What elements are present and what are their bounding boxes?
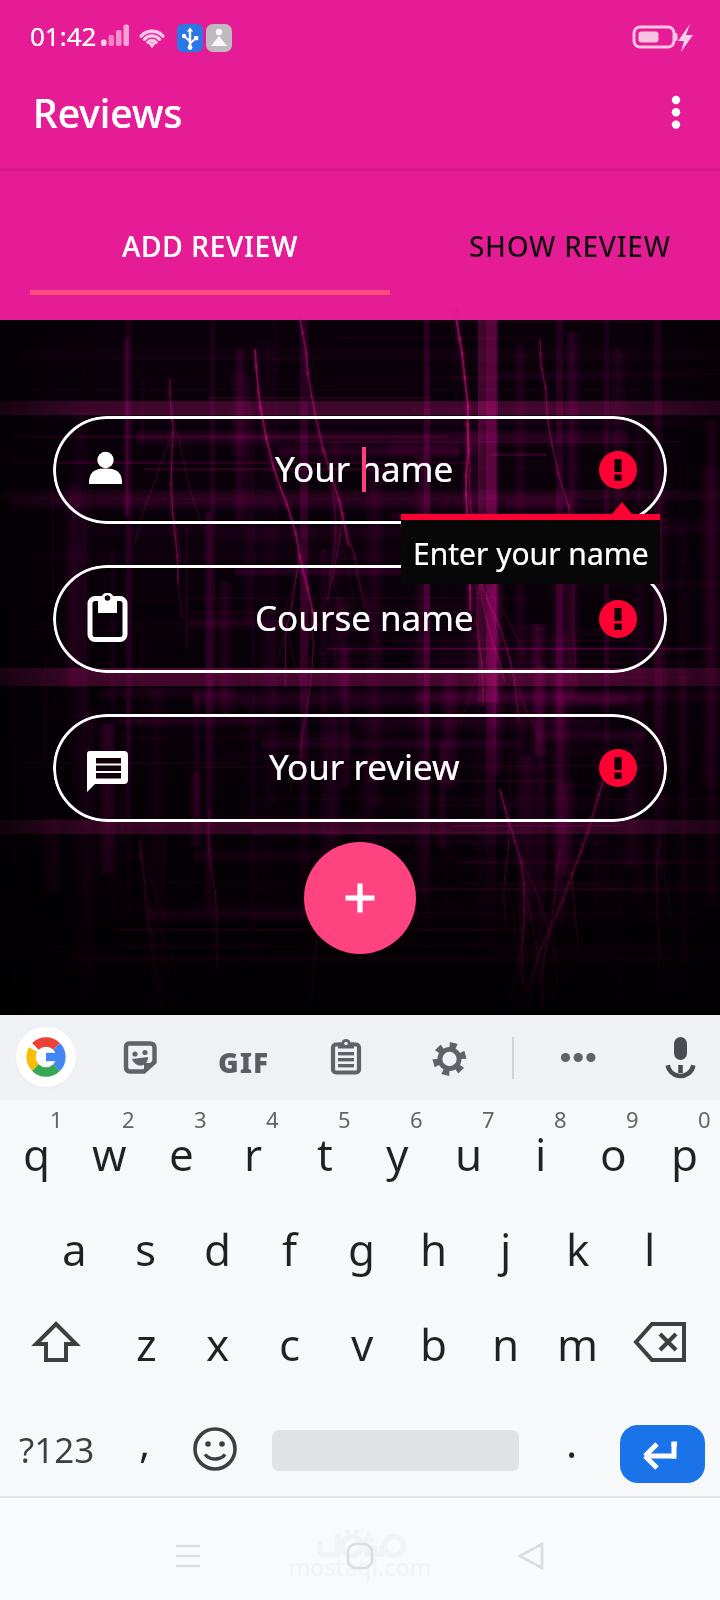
staticText: e xyxy=(169,1124,194,1184)
staticText: 0 xyxy=(698,1104,711,1134)
staticText: , xyxy=(139,1413,151,1470)
staticText: 7 xyxy=(482,1104,495,1134)
button[interactable]: e xyxy=(145,1103,217,1199)
staticText: u xyxy=(455,1124,483,1184)
button[interactable]: y xyxy=(361,1103,433,1199)
staticText: j xyxy=(500,1219,512,1279)
staticText: Reviews xyxy=(33,86,183,139)
button[interactable]: q xyxy=(1,1103,73,1199)
button[interactable]: ADD REVIEW xyxy=(30,168,390,320)
button[interactable]: Enter xyxy=(620,1425,705,1483)
staticText: 9 xyxy=(626,1104,639,1134)
button[interactable]: c xyxy=(254,1298,326,1390)
button[interactable]: f xyxy=(254,1203,326,1295)
button[interactable]: Home xyxy=(328,1524,392,1588)
button[interactable]: a xyxy=(38,1203,110,1295)
button[interactable]: w xyxy=(73,1103,145,1199)
staticText: v xyxy=(351,1314,374,1374)
staticText: 4 xyxy=(266,1104,279,1134)
staticText: Course name xyxy=(255,594,474,642)
staticText: a xyxy=(62,1219,87,1279)
staticText: SHOW REVIEW xyxy=(469,227,671,265)
staticText: Your name xyxy=(275,445,454,493)
button[interactable]: Backspace xyxy=(610,1298,714,1390)
button[interactable]: g xyxy=(326,1203,398,1295)
button[interactable]: Emoji xyxy=(181,1402,251,1498)
staticText: w xyxy=(92,1124,127,1184)
staticText: o xyxy=(600,1124,627,1184)
staticText: s xyxy=(135,1219,157,1279)
staticText: x xyxy=(206,1314,230,1374)
button[interactable]: Shift xyxy=(6,1298,110,1390)
button[interactable]: d xyxy=(182,1203,254,1295)
staticText: t xyxy=(317,1124,333,1184)
button[interactable]: Your name xyxy=(53,416,667,524)
staticText: d xyxy=(204,1219,232,1279)
staticText: 8 xyxy=(554,1104,567,1134)
button[interactable]: ?123 xyxy=(1,1402,113,1498)
staticText: y xyxy=(386,1124,409,1184)
button[interactable]: x xyxy=(182,1298,254,1390)
staticText: GIF xyxy=(218,1043,270,1081)
staticText: p xyxy=(671,1124,699,1184)
button[interactable]: m xyxy=(542,1298,614,1390)
staticText: mostaql.com xyxy=(280,1551,440,1582)
staticText: n xyxy=(492,1314,520,1374)
button[interactable]: j xyxy=(470,1203,542,1295)
staticText: ?123 xyxy=(19,1426,95,1474)
button[interactable]: Your review xyxy=(53,714,667,822)
button[interactable]: p xyxy=(649,1103,720,1199)
button[interactable]: k xyxy=(542,1203,614,1295)
button[interactable]: Recents xyxy=(156,1524,220,1588)
button[interactable]: Space xyxy=(253,1402,537,1498)
button[interactable]: i xyxy=(505,1103,577,1199)
button[interactable]: o xyxy=(577,1103,649,1199)
staticText: 6 xyxy=(410,1104,423,1134)
staticText: f xyxy=(282,1219,298,1279)
button[interactable]: z xyxy=(110,1298,182,1390)
button[interactable]: Add review xyxy=(304,842,416,954)
button[interactable]: . xyxy=(541,1402,603,1498)
staticText: Enter your name xyxy=(413,533,649,574)
staticText: 3 xyxy=(194,1104,207,1134)
staticText: z xyxy=(136,1314,157,1374)
staticText: r xyxy=(244,1124,263,1184)
button[interactable]: Back xyxy=(499,1524,563,1588)
button[interactable]: Course name xyxy=(53,565,667,673)
staticText: m xyxy=(557,1314,599,1374)
button[interactable]: SHOW REVIEW xyxy=(390,168,720,320)
staticText: k xyxy=(566,1219,590,1279)
button[interactable]: b xyxy=(398,1298,470,1390)
staticText: 01:42 xyxy=(30,18,97,53)
staticText: 2 xyxy=(122,1104,135,1134)
staticText: b xyxy=(420,1314,448,1374)
staticText: l xyxy=(644,1219,656,1279)
staticText: 1 xyxy=(50,1104,63,1134)
button[interactable]: l xyxy=(614,1203,686,1295)
button[interactable]: More options xyxy=(648,86,704,142)
button[interactable]: u xyxy=(433,1103,505,1199)
button[interactable]: t xyxy=(289,1103,361,1199)
staticText: 5 xyxy=(338,1104,351,1134)
staticText: i xyxy=(535,1124,547,1184)
button[interactable]: s xyxy=(110,1203,182,1295)
staticText: Your review xyxy=(269,743,460,791)
staticText: . xyxy=(566,1413,578,1470)
button[interactable]: , xyxy=(112,1402,178,1498)
staticText: ADD REVIEW xyxy=(122,227,298,265)
staticText: q xyxy=(23,1124,51,1184)
staticText: c xyxy=(279,1314,301,1374)
button[interactable]: v xyxy=(326,1298,398,1390)
button[interactable]: n xyxy=(470,1298,542,1390)
button[interactable]: r xyxy=(217,1103,289,1199)
staticText: g xyxy=(348,1219,376,1279)
staticText: h xyxy=(420,1219,448,1279)
button[interactable]: h xyxy=(398,1203,470,1295)
